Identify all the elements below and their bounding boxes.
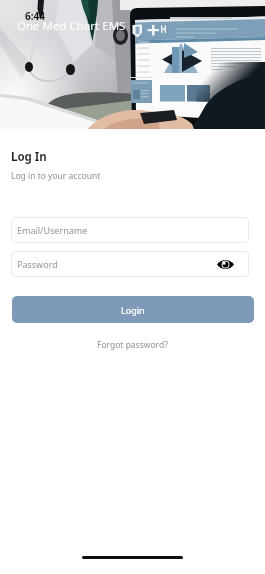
button[interactable]: Login [12,296,254,323]
staticText: One Med Chart EMS [17,18,126,34]
staticText: Login [121,304,145,316]
staticText: Log in to your account [11,170,101,182]
button[interactable]: Email/Username [11,217,249,243]
staticText: Email/Username [17,224,88,236]
button[interactable]: Show password [217,259,234,270]
button[interactable]: Forgot password? [93,335,172,355]
button[interactable]: Password [11,251,249,277]
staticText: Forgot password? [97,339,168,351]
staticText: Log In [11,149,47,165]
staticText: 6:44 [25,9,45,23]
staticText: Password [17,258,58,270]
